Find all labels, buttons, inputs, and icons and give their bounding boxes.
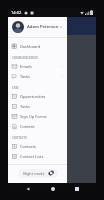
staticText: 14:02 (11, 10, 22, 15)
staticText: Opportunities (20, 94, 46, 99)
button[interactable]: Dashboard (8, 41, 67, 51)
staticText: Night mode (23, 171, 45, 176)
staticText: Contacts (20, 144, 36, 149)
staticText: Tasks (20, 74, 30, 79)
button[interactable]: Recent apps (72, 184, 81, 193)
staticText: Sign Up Forms (20, 114, 47, 119)
staticText: Emails (20, 64, 32, 69)
button[interactable]: Content (8, 121, 67, 131)
staticText: Content (20, 124, 35, 129)
button[interactable]: Home (48, 184, 57, 193)
staticText: Contact Lists (20, 154, 44, 159)
button[interactable]: Tasks (8, 71, 67, 81)
staticText: CONTACTS (12, 136, 27, 140)
staticText: COMMUNICATION (12, 56, 38, 60)
button[interactable]: Contacts (8, 141, 67, 151)
staticText: Adam Peterson (27, 24, 59, 30)
staticText: Tasks (20, 104, 30, 109)
button[interactable]: Emails (8, 61, 67, 71)
button[interactable]: Back (23, 184, 32, 193)
button[interactable]: Sign Up Forms (8, 111, 67, 121)
button[interactable]: Night mode (18, 169, 58, 178)
button[interactable]: Adam Peterson (8, 17, 67, 37)
button[interactable]: Tasks (8, 101, 67, 111)
staticText: Dashboard (20, 44, 41, 49)
staticText: CRM (12, 86, 19, 90)
button[interactable]: Contact Lists (8, 151, 67, 161)
button[interactable]: Opportunities (8, 91, 67, 101)
